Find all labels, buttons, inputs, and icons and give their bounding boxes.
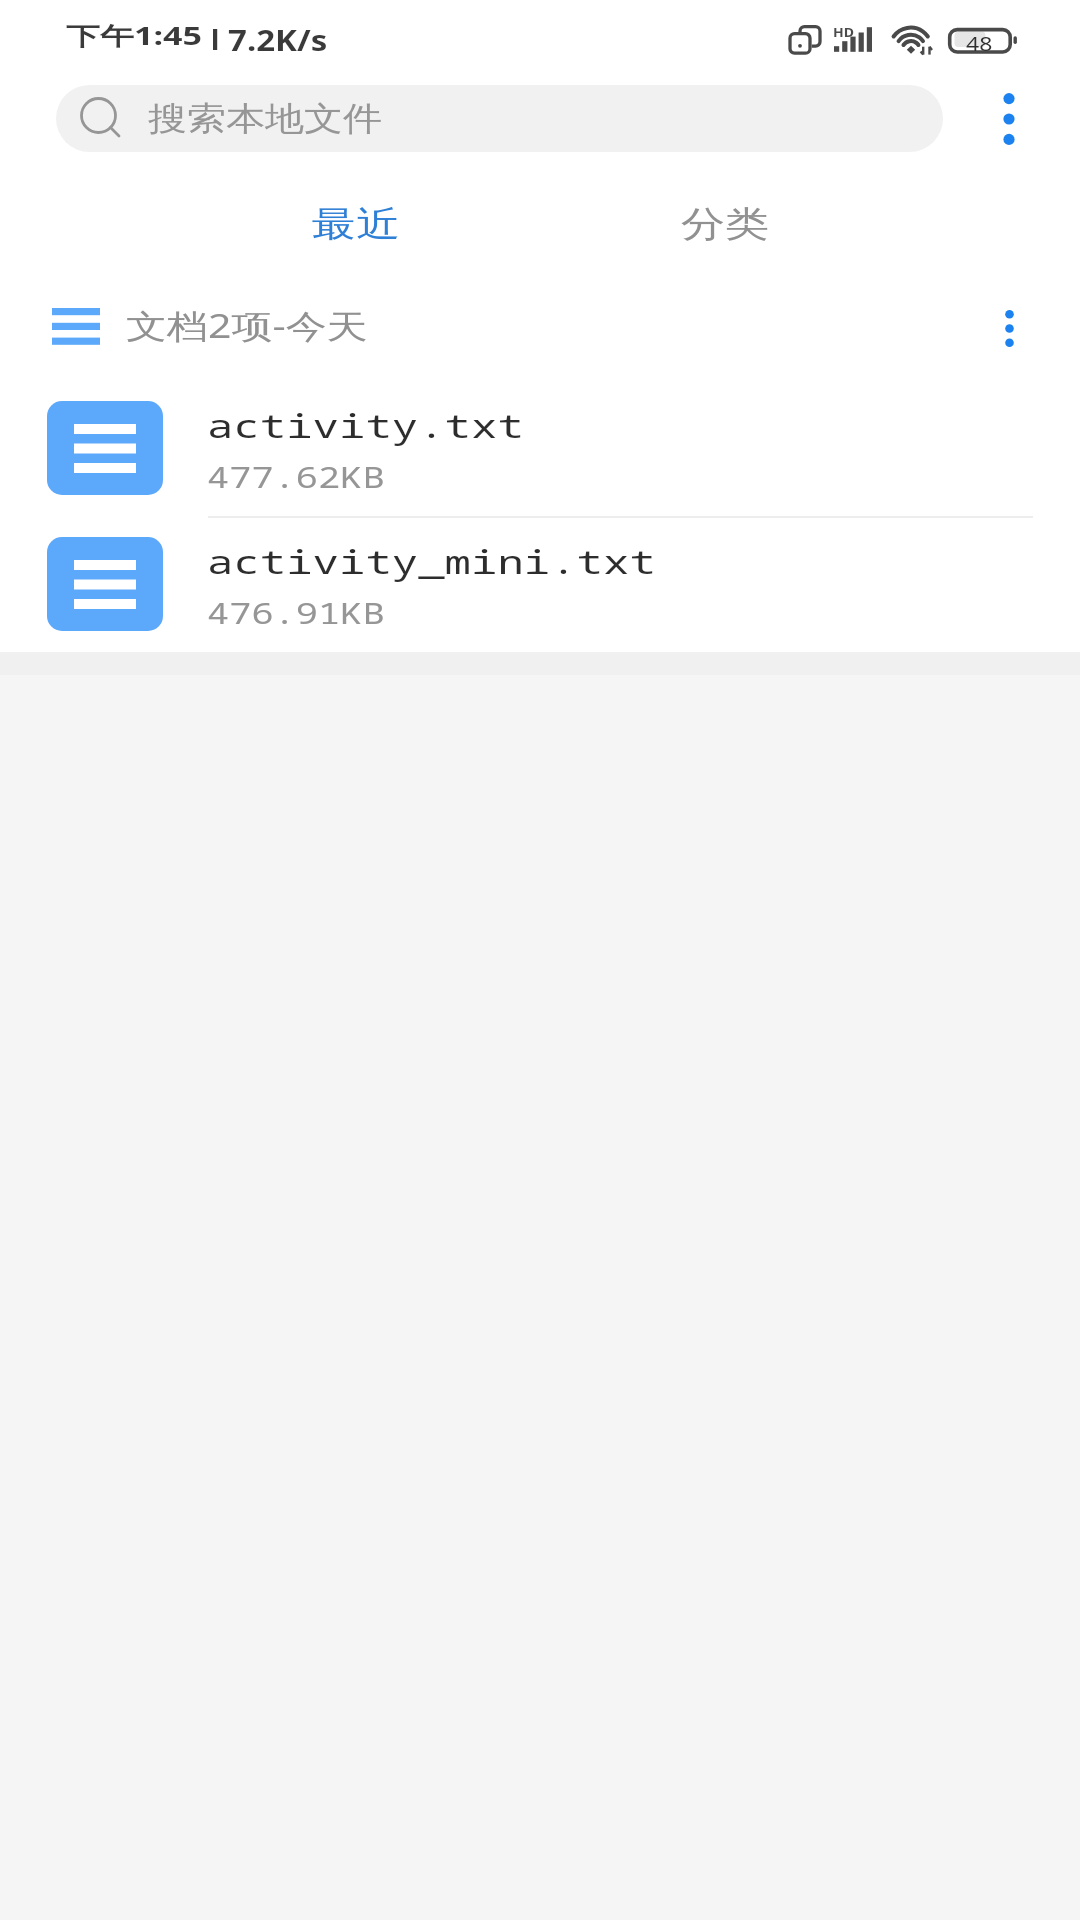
staticText: activity.txt xyxy=(207,403,524,448)
staticText: 7.2K/s xyxy=(228,21,328,59)
staticText: 476.91KB xyxy=(207,592,385,632)
staticText: 文档2项-今天 xyxy=(126,303,368,348)
staticText: activity_mini.txt xyxy=(207,539,656,584)
button[interactable]: 最近 xyxy=(170,174,540,274)
button[interactable]: More options xyxy=(957,72,1061,166)
staticText: 下午1:45 xyxy=(66,19,202,53)
button[interactable]: 搜索本地文件 xyxy=(56,85,943,152)
button[interactable]: activity.txt xyxy=(0,380,1080,516)
staticText: 最近 xyxy=(312,202,400,246)
button[interactable]: activity_mini.txt xyxy=(0,516,1080,652)
staticText: 分类 xyxy=(681,202,769,246)
staticText: 477.62KB xyxy=(207,456,385,496)
button[interactable]: 文档2项-今天 xyxy=(0,282,1080,374)
staticText: HD xyxy=(833,24,854,40)
button[interactable]: Group options xyxy=(962,282,1056,374)
staticText: 48 xyxy=(966,30,993,56)
staticText: 搜索本地文件 xyxy=(148,98,382,140)
button[interactable]: 分类 xyxy=(540,174,910,274)
